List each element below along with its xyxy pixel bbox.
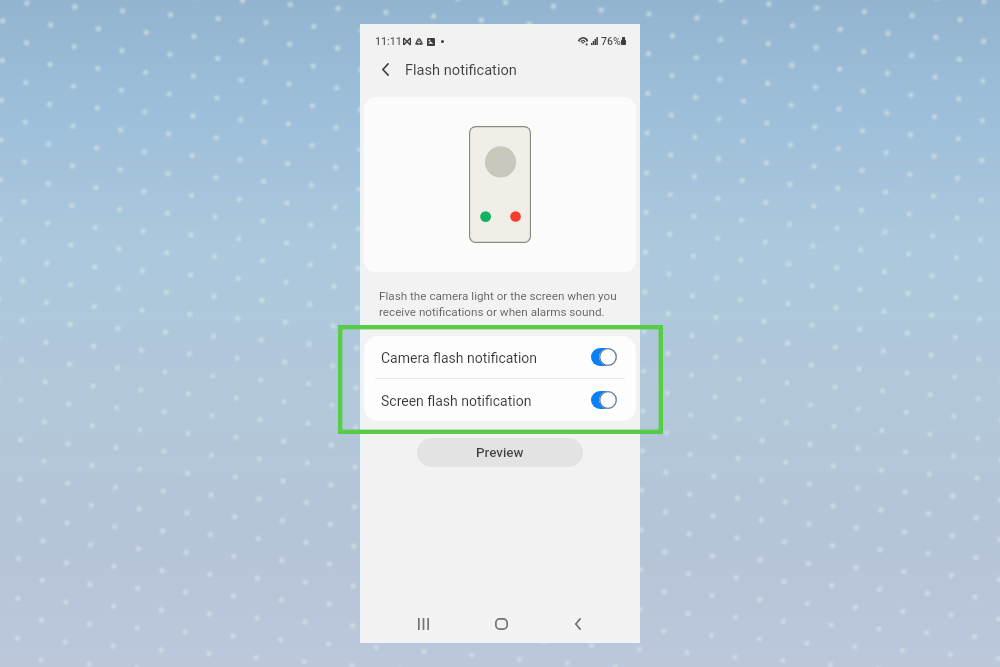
staticText: Camera flash notification [381,350,591,366]
button[interactable]: Navigate up [365,49,405,89]
staticText: Flash the camera light or the screen whe… [379,289,621,318]
staticText: Screen flash notification [381,393,591,409]
staticText: 11:11 [375,35,402,47]
staticText: Preview [476,445,524,461]
button[interactable]: Back [556,602,600,646]
button[interactable]: Home [479,602,523,646]
button[interactable]: Camera flash notification [364,336,636,378]
button[interactable]: Preview [417,438,583,467]
button[interactable]: Recent apps [401,602,445,646]
staticText: Flash notification [405,61,517,78]
staticText: 76% [601,35,621,47]
button[interactable]: Screen flash notification [364,379,636,421]
